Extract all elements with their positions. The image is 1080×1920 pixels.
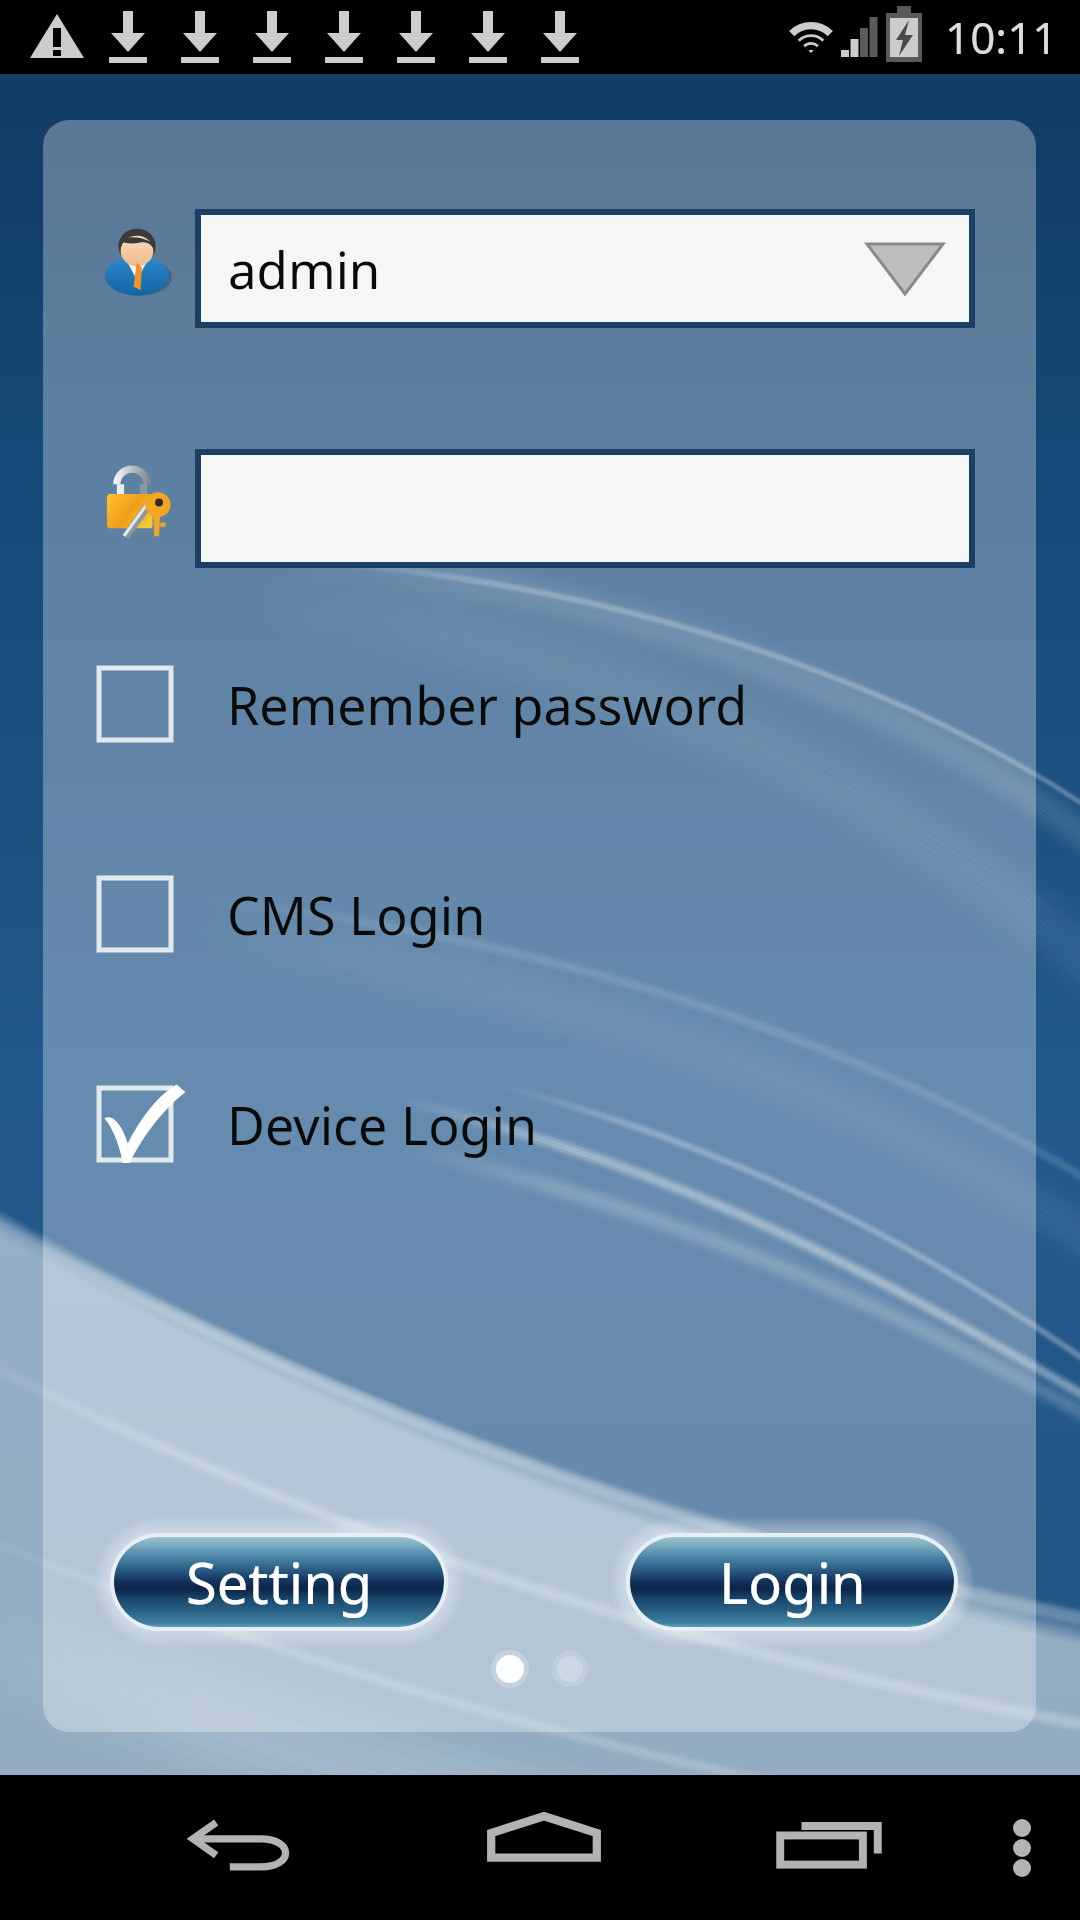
staticText: Remember password bbox=[227, 669, 748, 740]
button[interactable]: Remember password bbox=[99, 668, 748, 740]
button[interactable]: Login bbox=[630, 1537, 954, 1627]
button[interactable]: Device Login bbox=[99, 1088, 538, 1160]
button[interactable]: Back bbox=[84, 1775, 394, 1920]
staticText: Device Login bbox=[227, 1089, 538, 1160]
staticText: Setting bbox=[186, 1544, 373, 1620]
button[interactable]: admin bbox=[201, 215, 969, 322]
staticText: CMS Login bbox=[227, 879, 486, 950]
staticText: admin bbox=[228, 234, 381, 303]
staticText: 10:11 bbox=[945, 7, 1058, 67]
button[interactable]: Recent apps bbox=[694, 1775, 964, 1920]
button[interactable]: More options bbox=[964, 1775, 1080, 1920]
button[interactable]: CMS Login bbox=[99, 878, 486, 950]
button[interactable]: Setting bbox=[114, 1537, 444, 1627]
staticText: Login bbox=[719, 1544, 866, 1620]
button[interactable]: Home bbox=[394, 1775, 694, 1920]
